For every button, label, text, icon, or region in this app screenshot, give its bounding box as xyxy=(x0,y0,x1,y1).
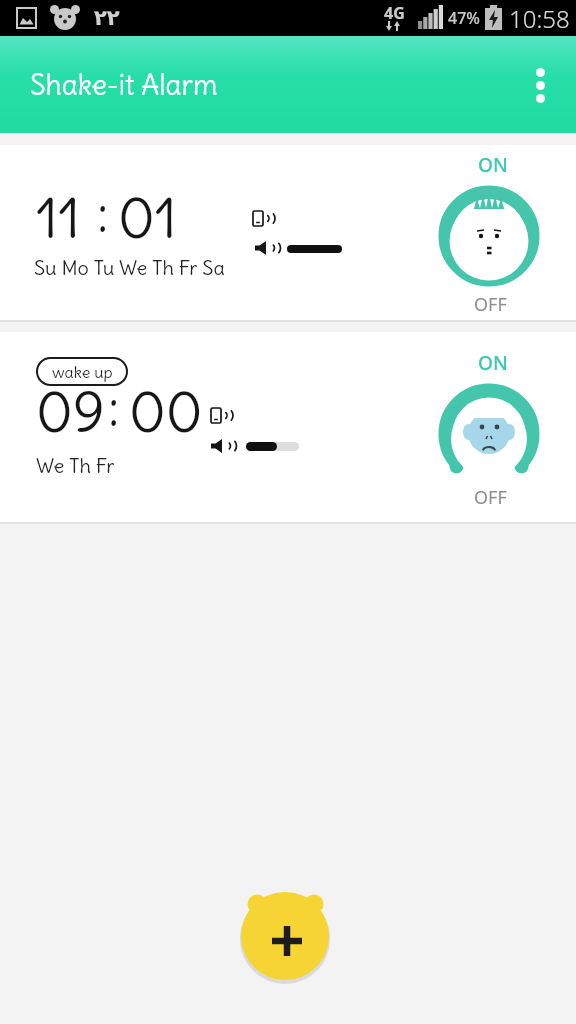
staticText: ON xyxy=(478,350,508,376)
staticText: wake up xyxy=(52,362,113,382)
staticText: 4G xyxy=(384,2,405,24)
staticText: 00 xyxy=(129,377,203,447)
staticText: OFF xyxy=(474,292,507,317)
staticText: 11 xyxy=(36,183,81,253)
button[interactable]: 11 xyxy=(0,145,576,320)
button[interactable] xyxy=(536,68,545,103)
staticText: Shake-it Alarm xyxy=(30,67,218,102)
staticText: 09 xyxy=(36,377,106,447)
staticText: 10:58 xyxy=(509,2,570,35)
button[interactable] xyxy=(439,384,539,484)
staticText: Su Mo Tu We Th Fr Sa xyxy=(34,255,225,280)
button[interactable] xyxy=(233,884,337,988)
staticText: : xyxy=(97,183,109,246)
staticText: ON xyxy=(478,152,508,178)
staticText: ٢٢ xyxy=(94,6,120,30)
staticText: : xyxy=(108,377,120,440)
staticText: OFF xyxy=(474,485,507,510)
staticText: 01 xyxy=(118,183,178,253)
staticText: We Th Fr xyxy=(36,453,115,478)
button[interactable]: wake up xyxy=(0,332,576,522)
button[interactable] xyxy=(439,186,539,286)
staticText: 47% xyxy=(448,7,480,29)
